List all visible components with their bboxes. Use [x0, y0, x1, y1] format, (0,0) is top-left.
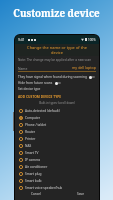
staticText: Computer	[25, 116, 41, 120]
button[interactable]: Printer	[15, 135, 99, 142]
button[interactable]: Smart plug	[15, 170, 99, 177]
staticText: Smart bulb	[25, 179, 42, 183]
staticText: Auto-detected (default)	[25, 109, 60, 113]
button[interactable]: Smart TV	[15, 149, 99, 156]
staticText: IP camera	[25, 158, 40, 162]
button[interactable]: IP camera	[15, 156, 99, 163]
button[interactable]: Name	[15, 65, 99, 70]
staticText: Change the name or type of the device	[18, 45, 96, 55]
button[interactable]: Phone / tablet	[15, 121, 99, 128]
staticText: Customize device	[0, 7, 113, 20]
button[interactable]: They have signal when found during scann…	[15, 74, 99, 80]
staticText: Phone / tablet	[25, 123, 47, 127]
staticText: NAS	[25, 144, 32, 148]
button[interactable]: Hide from future scans	[15, 80, 99, 86]
button[interactable]: Computer	[15, 114, 99, 121]
button[interactable]: Smart bulb	[15, 177, 99, 184]
staticText: Router	[25, 130, 36, 134]
button[interactable]: Cancel	[27, 191, 45, 197]
button[interactable]: Save	[73, 191, 88, 197]
button[interactable]: NAS	[15, 142, 99, 149]
staticText: Save	[77, 192, 84, 196]
staticText: 9:41	[18, 37, 25, 42]
staticText: Air conditioner	[25, 165, 48, 169]
button[interactable]: Router	[15, 128, 99, 135]
button[interactable]: Set device type	[15, 86, 99, 92]
staticText: Smart plug	[25, 172, 42, 176]
staticText: Cancel	[31, 192, 41, 196]
staticText: 100%	[88, 38, 96, 42]
staticText: Printer	[25, 137, 36, 141]
staticText: Set device type	[18, 87, 41, 91]
button[interactable]: Auto-detected (default)	[15, 107, 99, 114]
staticText: They have signal when found during scann…	[18, 75, 87, 79]
button[interactable]: ADD CUSTOM DEVICE TYPE	[15, 93, 99, 99]
staticText: Hide from future scans	[18, 81, 53, 85]
button[interactable]: Smart voice speaker/hub	[15, 184, 99, 191]
button[interactable]: Air conditioner	[15, 163, 99, 170]
staticText: Name	[18, 66, 28, 70]
staticText: Built-in types (scroll down)	[15, 101, 99, 105]
staticText: ADD CUSTOM DEVICE TYPE	[18, 94, 62, 98]
staticText: Note: The change may be applied after a …	[18, 58, 96, 62]
staticText: Smart TV	[25, 151, 39, 155]
staticText: Smart voice speaker/hub	[25, 186, 63, 190]
staticText: my dell laptop	[72, 65, 96, 70]
